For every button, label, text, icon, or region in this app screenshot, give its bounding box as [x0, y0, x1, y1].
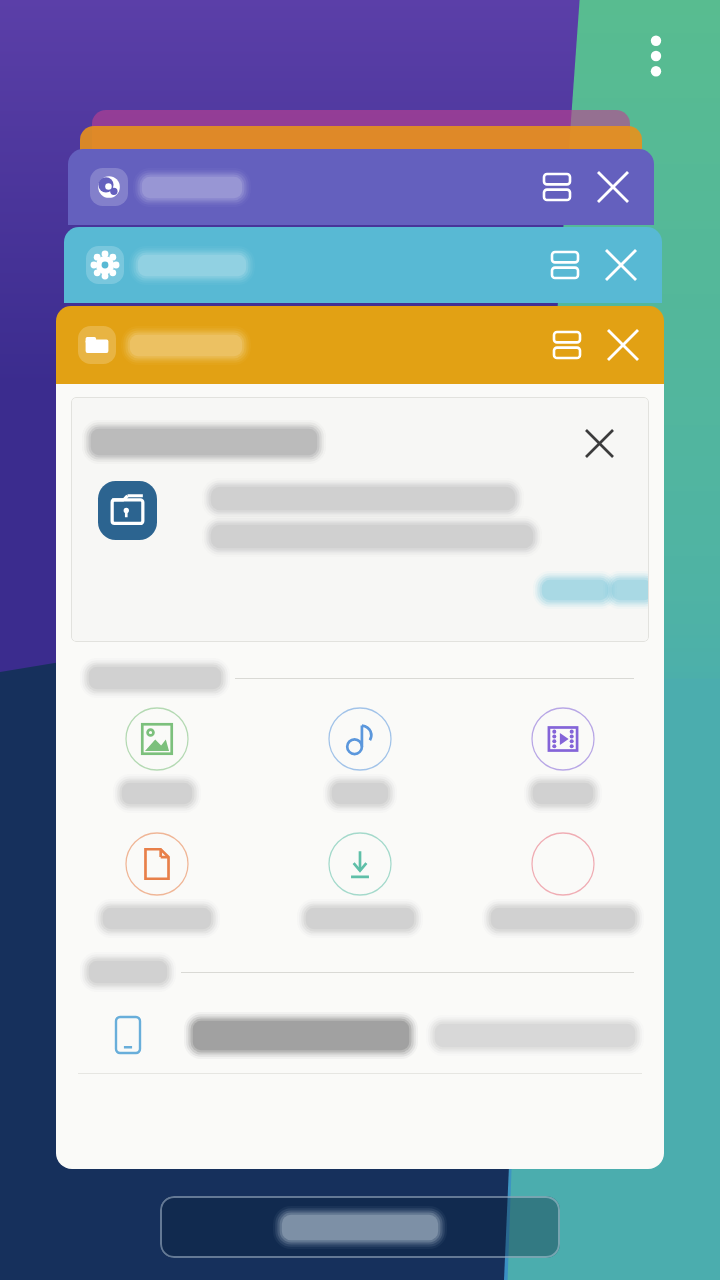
- button[interactable]: Close all: [160, 1196, 560, 1258]
- button[interactable]: Recent app: [92, 110, 630, 150]
- button[interactable]: Recent app: [80, 126, 642, 166]
- button[interactable]: Close tip: [56, 384, 664, 1169]
- button[interactable]: Close tip: [71, 397, 649, 642]
- button[interactable]: Audio: [258, 703, 461, 806]
- button[interactable]: Downloads: [258, 828, 461, 931]
- button[interactable]: Open in split screen view: [534, 164, 580, 210]
- button[interactable]: Videos: [461, 703, 664, 806]
- button[interactable]: More info: [541, 569, 649, 611]
- button[interactable]: Close Internet: [590, 164, 636, 210]
- button[interactable]: More options: [632, 18, 680, 94]
- button[interactable]: Documents: [56, 828, 258, 931]
- button[interactable]: Open in split screen view: [542, 242, 588, 288]
- button[interactable]: My Files: [56, 306, 664, 384]
- button[interactable]: Close Settings: [598, 242, 644, 288]
- button[interactable]: Settings: [64, 227, 662, 303]
- button[interactable]: Internet: [68, 149, 654, 225]
- button[interactable]: Internal storage: [56, 1003, 664, 1067]
- button[interactable]: Close My Files: [600, 322, 646, 368]
- button[interactable]: Images: [56, 703, 258, 806]
- button[interactable]: Close tip: [571, 415, 627, 471]
- button[interactable]: Installation files: [461, 828, 664, 931]
- button[interactable]: Open in split screen view: [544, 322, 590, 368]
